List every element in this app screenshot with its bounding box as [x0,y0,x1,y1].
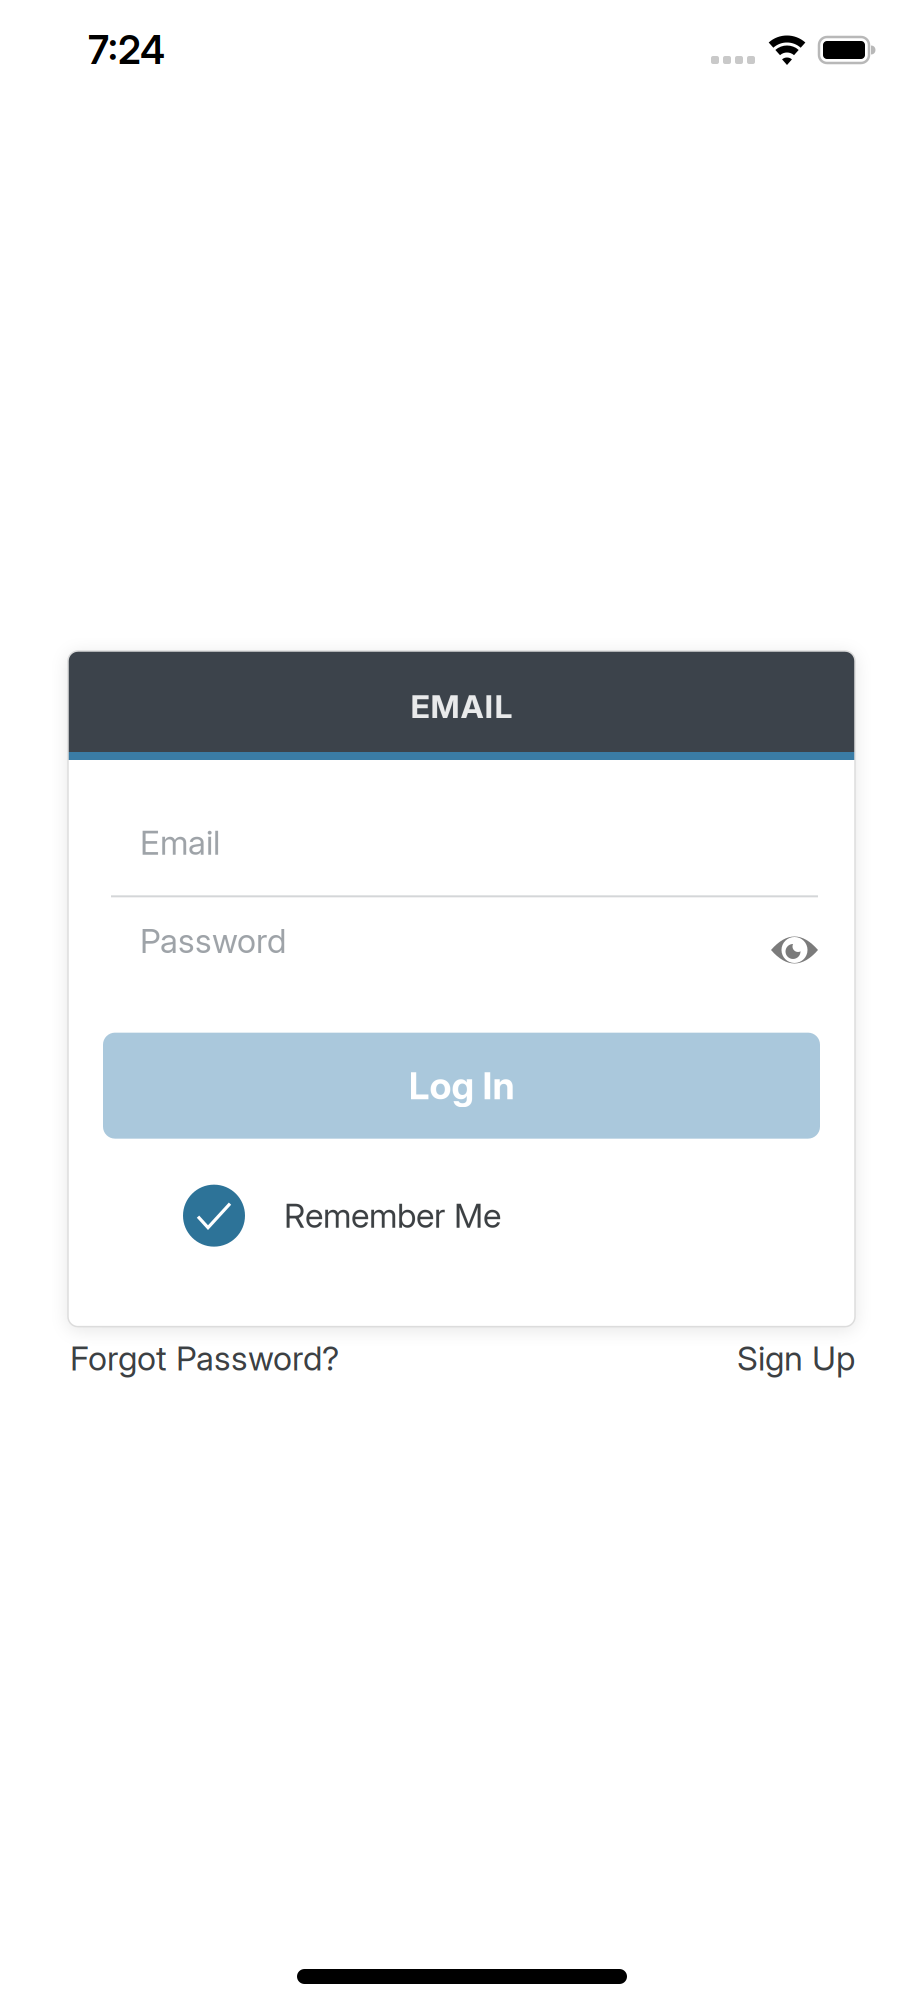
button[interactable]: Sign Up [737,1339,855,1378]
staticText: Forgot Password? [70,1339,339,1378]
button[interactable]: Show password [771,935,818,965]
staticText: Password [140,921,286,961]
button[interactable]: Email [140,823,818,862]
button[interactable]: Forgot Password? [70,1339,339,1378]
button[interactable]: Log In [103,1033,820,1139]
staticText: Sign Up [737,1339,855,1378]
staticText: EMAIL [410,688,512,725]
staticText: 7:24 [88,27,165,73]
button[interactable]: Password [140,921,771,961]
button[interactable]: Remember Me [183,1185,855,1247]
staticText: Remember Me [284,1196,501,1235]
staticText: Email [140,823,220,862]
staticText: Log In [408,1064,514,1108]
